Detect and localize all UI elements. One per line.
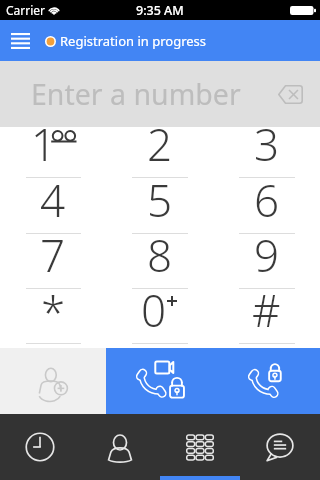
staticText: 7	[40, 225, 66, 280]
staticText: 0	[141, 280, 167, 335]
button[interactable]: Add contact	[0, 348, 106, 414]
staticText: Enter a number	[31, 75, 241, 114]
button[interactable]: 3	[213, 127, 320, 183]
staticText: #	[252, 280, 281, 335]
button[interactable]: 8	[106, 238, 213, 293]
staticText: 1	[31, 114, 57, 170]
staticText: 5	[147, 170, 173, 225]
button[interactable]: *	[0, 293, 106, 348]
button[interactable]: 7	[0, 238, 106, 293]
staticText: 6	[254, 170, 280, 225]
staticText: 9	[254, 225, 280, 280]
button[interactable]: Secure call	[213, 348, 320, 414]
staticText: Carrier	[6, 2, 46, 18]
button[interactable]: Messages	[240, 414, 320, 480]
staticText: 2	[147, 114, 173, 170]
staticText: 4	[40, 170, 66, 225]
button[interactable]: Dial pad	[160, 414, 240, 480]
button[interactable]: 9	[213, 238, 320, 293]
button[interactable]: 5	[106, 183, 213, 238]
button[interactable]: Contacts	[80, 414, 160, 480]
button[interactable]: Recent calls	[0, 414, 80, 480]
button[interactable]: 0	[106, 293, 213, 348]
button[interactable]: 6	[213, 183, 320, 238]
staticText: *	[41, 282, 66, 337]
button[interactable]: Secure video call	[106, 348, 213, 414]
button[interactable]: Open navigation menu	[0, 20, 40, 61]
button[interactable]: #	[213, 293, 320, 348]
button[interactable]: 1	[0, 127, 106, 183]
button[interactable]: 4	[0, 183, 106, 238]
staticText: 9:35 AM	[136, 2, 184, 19]
staticText: Registration in progress	[60, 32, 207, 50]
staticText: 8	[147, 225, 173, 280]
staticText: 3	[254, 114, 280, 170]
button[interactable]: Backspace	[272, 76, 308, 112]
button[interactable]: 2	[106, 127, 213, 183]
